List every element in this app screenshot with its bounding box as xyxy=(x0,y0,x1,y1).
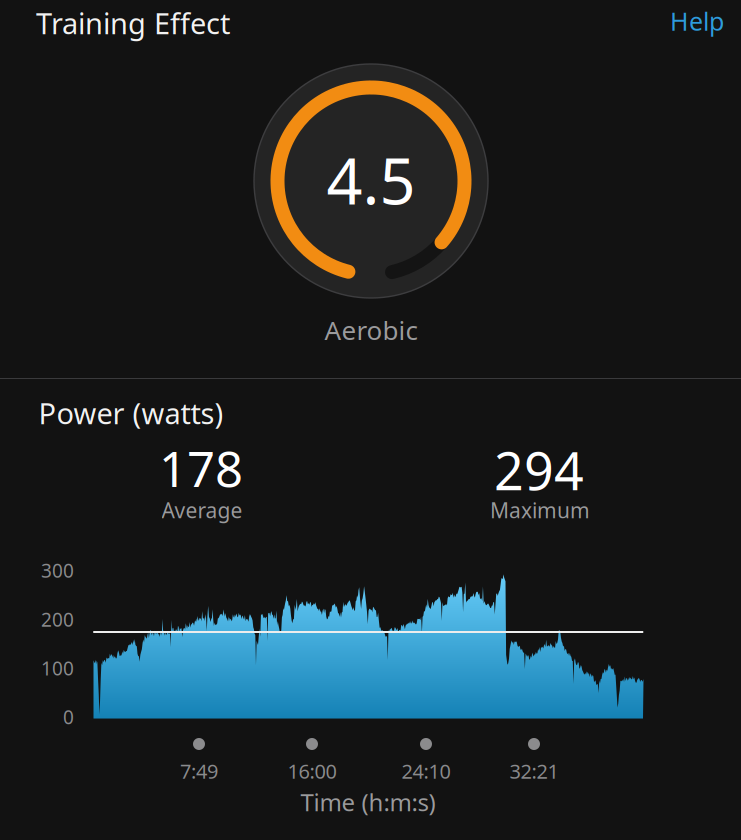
staticText: 100 xyxy=(41,655,74,681)
staticText: 24:10 xyxy=(401,757,450,785)
staticText: 200 xyxy=(41,606,74,632)
staticText: Power (watts) xyxy=(38,393,223,433)
staticText: Training Effect xyxy=(36,3,230,43)
staticText: 4.5 xyxy=(326,137,415,223)
staticText: Aerobic xyxy=(324,312,417,348)
staticText: Average xyxy=(161,496,242,524)
staticText: 7:49 xyxy=(180,757,218,785)
button[interactable]: Training Effect xyxy=(36,3,230,43)
staticText: Help xyxy=(670,4,724,38)
staticText: 300 xyxy=(41,558,74,583)
staticText: Time (h:m:s) xyxy=(300,786,435,818)
staticText: 294 xyxy=(494,435,584,505)
staticText: 0 xyxy=(63,704,74,730)
staticText: Maximum xyxy=(490,496,590,524)
staticText: 32:21 xyxy=(509,757,558,785)
staticText: 16:00 xyxy=(287,757,336,785)
staticText: 178 xyxy=(159,435,243,501)
button[interactable]: Help xyxy=(670,4,724,38)
